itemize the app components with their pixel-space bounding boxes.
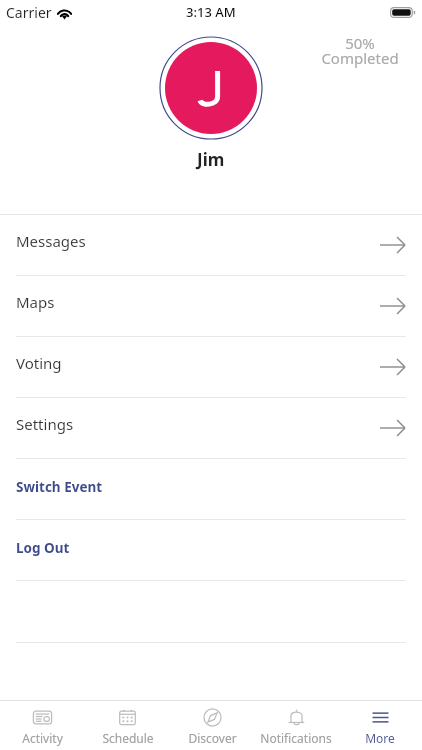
staticText: Activity bbox=[22, 730, 63, 746]
staticText: Voting bbox=[16, 353, 62, 373]
other: Open Maps bbox=[380, 298, 405, 314]
button[interactable]: Settings bbox=[0, 398, 422, 458]
button[interactable]: Log Out bbox=[0, 520, 422, 580]
staticText: Messages bbox=[16, 231, 86, 251]
button[interactable]: More bbox=[338, 701, 422, 750]
other: Open Messages bbox=[380, 237, 405, 253]
staticText: More bbox=[365, 730, 395, 746]
button[interactable]: Notifications bbox=[254, 701, 338, 750]
button[interactable]: Maps bbox=[0, 276, 422, 336]
staticText: 3:13 AM bbox=[186, 3, 236, 21]
staticText: Notifications bbox=[260, 730, 332, 746]
staticText: Switch Event bbox=[16, 478, 103, 496]
other: Open Settings bbox=[380, 420, 405, 436]
button[interactable]: Schedule bbox=[85, 701, 170, 750]
staticText: Discover bbox=[188, 730, 237, 746]
button[interactable]: Discover bbox=[170, 701, 254, 750]
staticText: Completed bbox=[321, 48, 399, 68]
staticText: Log Out bbox=[16, 539, 70, 557]
button[interactable]: Voting bbox=[0, 337, 422, 397]
staticText: Maps bbox=[16, 292, 55, 312]
button[interactable]: Messages bbox=[0, 215, 422, 275]
staticText: Carrier bbox=[6, 3, 52, 22]
staticText: Jim bbox=[197, 148, 225, 171]
staticText: Settings bbox=[16, 414, 74, 434]
staticText: 50% bbox=[345, 33, 375, 53]
staticText: Schedule bbox=[102, 730, 154, 746]
button[interactable]: Activity bbox=[0, 701, 85, 750]
other: Open Voting bbox=[380, 359, 405, 375]
button[interactable]: Switch Event bbox=[0, 459, 422, 519]
